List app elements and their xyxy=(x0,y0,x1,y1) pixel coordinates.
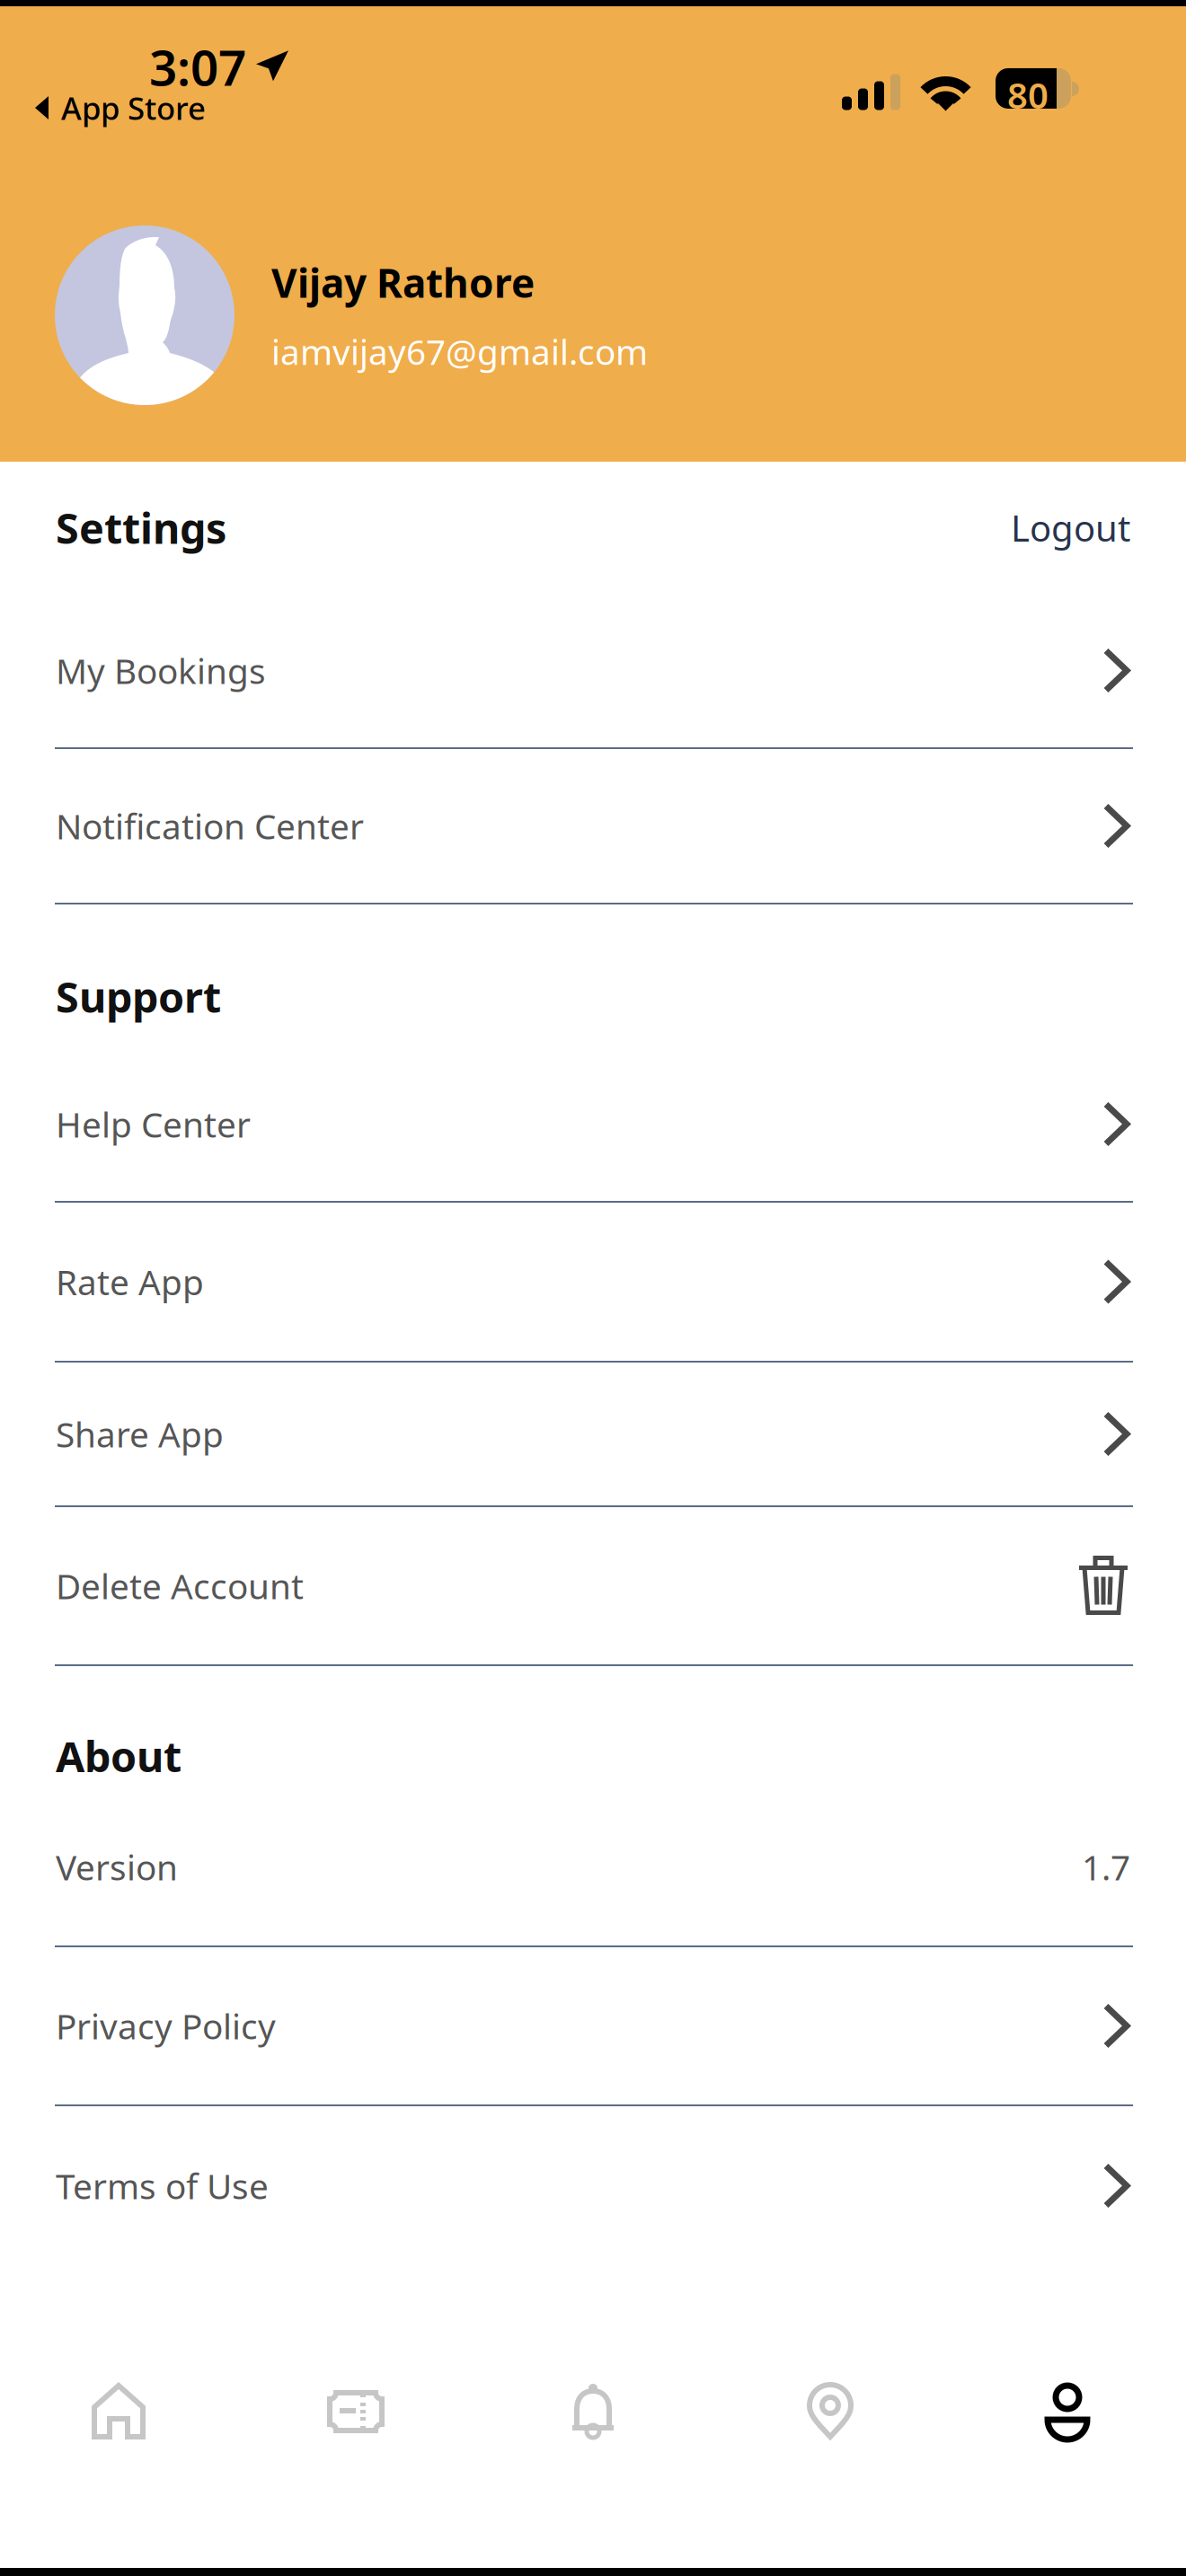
staticText: Help Center xyxy=(56,1101,251,1147)
staticText: Terms of Use xyxy=(56,2163,269,2209)
button[interactable]: App Store xyxy=(34,87,206,128)
staticText: About xyxy=(56,1728,181,1784)
button[interactable]: Version xyxy=(0,1788,1186,1947)
staticText: iamvijay67@gmail.com xyxy=(271,328,648,374)
staticText: Version xyxy=(56,1844,178,1890)
button[interactable]: Help Center xyxy=(0,1047,1186,1203)
button[interactable]: Rate App xyxy=(0,1203,1186,1363)
staticText: 80 xyxy=(1007,71,1049,119)
staticText: 1.7 xyxy=(1082,1844,1130,1890)
staticText: Notification Center xyxy=(56,803,364,849)
button[interactable]: My Bookings xyxy=(0,594,1186,749)
button[interactable]: Bookings xyxy=(237,2335,474,2488)
button[interactable]: Privacy Policy xyxy=(0,1947,1186,2106)
button[interactable]: Terms of Use xyxy=(0,2106,1186,2265)
button[interactable]: Logout xyxy=(1011,504,1130,551)
staticText: App Store xyxy=(61,87,206,128)
button[interactable]: Home xyxy=(0,2335,237,2488)
staticText: Logout xyxy=(1011,504,1130,551)
staticText: Privacy Policy xyxy=(56,2003,276,2049)
staticText: Delete Account xyxy=(56,1563,304,1609)
button[interactable]: Delete Account xyxy=(0,1507,1186,1666)
button[interactable]: Notification Center xyxy=(0,749,1186,904)
staticText: Settings xyxy=(56,500,226,556)
staticText: Support xyxy=(56,969,221,1024)
staticText: Vijay Rathore xyxy=(271,256,535,309)
button[interactable]: Notifications xyxy=(474,2335,712,2488)
staticText: Rate App xyxy=(56,1259,204,1305)
staticText: My Bookings xyxy=(56,647,266,693)
staticText: Share App xyxy=(56,1411,224,1457)
button[interactable]: Profile xyxy=(949,2335,1186,2488)
button[interactable]: Explore xyxy=(712,2335,949,2488)
staticText: 3:07 xyxy=(149,34,246,99)
button[interactable]: Share App xyxy=(0,1363,1186,1507)
